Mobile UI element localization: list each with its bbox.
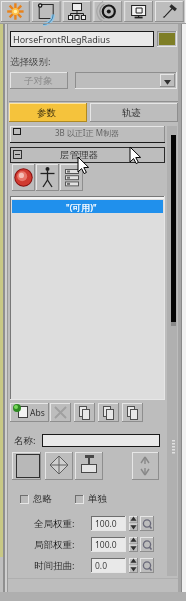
staticText: 名称: xyxy=(14,434,36,447)
button[interactable]: Sub-object level xyxy=(75,72,177,89)
button[interactable]: Set key xyxy=(12,164,35,191)
staticText: "(可用)" xyxy=(66,201,97,213)
button[interactable]: Paste xyxy=(75,452,103,480)
button[interactable]: Layer list box xyxy=(10,196,165,400)
button[interactable]: Tool 2 xyxy=(74,403,95,422)
button[interactable]: Object color xyxy=(157,31,177,47)
staticText: 0.0 xyxy=(95,560,108,572)
button[interactable]: Collapse xyxy=(132,452,159,480)
button[interactable]: Value xyxy=(91,537,126,552)
button[interactable]: Tool 4 xyxy=(122,403,143,422)
button[interactable]: Spinner xyxy=(129,537,138,552)
button[interactable]: Tool 1 xyxy=(50,403,71,422)
staticText: 时间扭曲: xyxy=(34,559,75,572)
button[interactable]: Object name xyxy=(10,31,154,47)
button[interactable]: Absolute mode xyxy=(10,403,49,422)
button[interactable]: Move xyxy=(45,452,73,480)
staticText: 100.0 xyxy=(95,539,117,551)
button[interactable]: Ignore xyxy=(20,493,60,505)
button[interactable]: Animate xyxy=(140,558,154,573)
button[interactable]: Value xyxy=(91,516,126,531)
staticText: 选择级别: xyxy=(10,55,51,68)
button[interactable]: Layer color xyxy=(12,452,41,480)
button[interactable]: Name xyxy=(42,434,160,447)
button[interactable]: Rollout xyxy=(10,126,165,143)
button[interactable]: Value xyxy=(91,558,126,573)
button[interactable]: Layer list xyxy=(60,164,83,191)
staticText: 单独 xyxy=(88,493,107,505)
button[interactable] xyxy=(9,103,87,122)
button[interactable]: Solo xyxy=(75,493,115,505)
staticText: HorseFrontRLegRadius xyxy=(13,33,110,45)
button[interactable]: Display xyxy=(123,0,154,23)
button[interactable]: Tool 3 xyxy=(98,403,119,422)
staticText: Abs xyxy=(30,407,45,419)
staticText: 3B 以正I正 M制器 xyxy=(55,127,119,138)
staticText: 局部权重: xyxy=(34,538,75,551)
button[interactable]: Animate xyxy=(140,516,154,531)
staticText: 轨迹 xyxy=(122,107,141,119)
button[interactable]: Create xyxy=(0,0,31,23)
button[interactable]: Biped xyxy=(36,164,59,191)
button[interactable]: Spinner xyxy=(129,558,138,573)
button[interactable]: Animate xyxy=(140,537,154,552)
button[interactable]: Modify xyxy=(30,0,61,23)
staticText: 层管理器 xyxy=(60,149,98,161)
button[interactable]: Sub-object xyxy=(10,72,68,89)
button[interactable] xyxy=(90,103,178,122)
staticText: 100.0 xyxy=(95,518,117,530)
staticText: 子对象 xyxy=(24,75,53,87)
button[interactable]: Utilities xyxy=(154,0,185,23)
staticText: 参数 xyxy=(37,107,56,119)
button[interactable]: Motion xyxy=(92,0,123,23)
button[interactable]: Spinner xyxy=(129,516,138,531)
staticText: 忽略 xyxy=(33,493,52,505)
staticText: 全局权重: xyxy=(34,517,75,530)
button[interactable]: Hierarchy xyxy=(61,0,92,23)
button[interactable]: Layer manager xyxy=(10,147,165,163)
